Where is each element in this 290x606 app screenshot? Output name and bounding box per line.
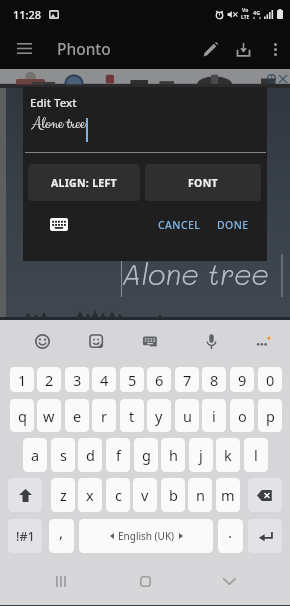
- button[interactable]: e: [65, 399, 89, 432]
- staticText: 2: [45, 370, 54, 390]
- button[interactable]: Backspace: [248, 478, 282, 512]
- staticText: z: [60, 485, 67, 505]
- button[interactable]: b: [161, 478, 185, 512]
- button[interactable]: More keyboard options: [249, 328, 276, 355]
- staticText: 11:28: [13, 7, 42, 22]
- staticText: b: [169, 485, 178, 505]
- staticText: m: [221, 485, 235, 505]
- button[interactable]: 3: [65, 367, 89, 392]
- button[interactable]: j: [189, 438, 213, 472]
- button[interactable]: x: [78, 478, 102, 512]
- button[interactable]: Ad information: [266, 73, 277, 84]
- button[interactable]: Navigation menu: [10, 34, 39, 63]
- button[interactable]: u: [175, 399, 199, 432]
- button[interactable]: f: [106, 438, 130, 472]
- button[interactable]: FONT: [145, 164, 261, 201]
- button[interactable]: Period: [218, 519, 243, 553]
- button[interactable]: c: [106, 478, 130, 512]
- button[interactable]: o: [230, 399, 254, 432]
- button[interactable]: !#1: [8, 519, 42, 553]
- staticText: 0: [266, 370, 275, 390]
- button[interactable]: Save image: [227, 33, 260, 66]
- staticText: e: [73, 406, 82, 426]
- staticText: u: [183, 406, 192, 426]
- staticText: FONT: [188, 176, 218, 190]
- button[interactable]: English (UK): [79, 519, 213, 553]
- button[interactable]: d: [78, 438, 102, 472]
- staticText: y: [155, 406, 163, 426]
- button[interactable]: z: [51, 478, 75, 512]
- staticText: p: [266, 406, 275, 426]
- staticText: 1: [18, 370, 27, 390]
- staticText: k: [224, 445, 232, 465]
- button[interactable]: g: [134, 438, 158, 472]
- button[interactable]: Home: [122, 558, 168, 604]
- staticText: ALIGN: LEFT: [51, 176, 117, 190]
- button[interactable]: 5: [120, 367, 144, 392]
- staticText: !#1: [16, 528, 35, 545]
- button[interactable]: 1: [10, 367, 34, 392]
- button[interactable]: Recent apps: [38, 558, 84, 604]
- button[interactable]: Close ad: [277, 73, 288, 84]
- button[interactable]: a: [23, 438, 47, 472]
- button[interactable]: i: [202, 399, 226, 432]
- staticText: 3: [73, 370, 82, 390]
- button[interactable]: 0: [258, 367, 282, 392]
- staticText: 7: [183, 370, 192, 390]
- button[interactable]: s: [51, 438, 75, 472]
- staticText: g: [142, 445, 151, 465]
- staticText: 5: [128, 370, 137, 390]
- staticText: d: [86, 445, 95, 465]
- button[interactable]: More options: [260, 34, 290, 64]
- button[interactable]: r: [92, 399, 116, 432]
- button[interactable]: 2: [37, 367, 61, 392]
- staticText: Phonto: [57, 38, 111, 59]
- button[interactable]: Show keyboard: [45, 213, 73, 235]
- button[interactable]: Back: [206, 558, 252, 604]
- staticText: x: [86, 485, 94, 505]
- button[interactable]: h: [161, 438, 185, 472]
- button[interactable]: 8: [202, 367, 226, 392]
- staticText: Alone tree: [32, 112, 86, 134]
- button[interactable]: m: [216, 478, 240, 512]
- button[interactable]: Shift: [8, 478, 42, 512]
- staticText: .: [228, 522, 233, 542]
- button[interactable]: t: [120, 399, 144, 432]
- button[interactable]: ALIGN: LEFT: [28, 164, 140, 201]
- button[interactable]: p: [258, 399, 282, 432]
- staticText: i: [212, 406, 216, 426]
- staticText: q: [18, 406, 27, 426]
- button[interactable]: 9: [230, 367, 254, 392]
- staticText: v: [141, 485, 149, 505]
- staticText: l: [254, 445, 258, 465]
- button[interactable]: n: [188, 478, 212, 512]
- button[interactable]: Clipboard: [137, 328, 164, 355]
- button[interactable]: v: [133, 478, 157, 512]
- button[interactable]: w: [37, 399, 61, 432]
- staticText: Edit Text: [30, 95, 77, 111]
- button[interactable]: Comma: [49, 519, 74, 553]
- button[interactable]: y: [147, 399, 171, 432]
- button[interactable]: q: [10, 399, 34, 432]
- button[interactable]: k: [216, 438, 240, 472]
- button[interactable]: Edit text: [193, 32, 227, 66]
- button[interactable]: l: [244, 438, 268, 472]
- button[interactable]: Voice input: [198, 328, 225, 355]
- button[interactable]: 6: [147, 367, 171, 392]
- button[interactable]: 4: [92, 367, 116, 392]
- staticText: a: [31, 445, 40, 465]
- button[interactable]: Emoji: [29, 328, 56, 355]
- button[interactable]: Stickers: [83, 328, 110, 355]
- button[interactable]: 7: [175, 367, 199, 392]
- staticText: r: [101, 406, 107, 426]
- button[interactable]: Enter: [248, 519, 282, 553]
- button[interactable]: CANCEL: [153, 215, 206, 235]
- staticText: n: [196, 485, 205, 505]
- staticText: DONE: [217, 218, 249, 232]
- staticText: ,: [59, 522, 64, 542]
- staticText: CANCEL: [158, 218, 201, 232]
- button[interactable]: DONE: [214, 215, 252, 235]
- staticText: Alone tree: [122, 255, 269, 293]
- staticText: o: [238, 406, 247, 426]
- staticText: f: [116, 445, 121, 465]
